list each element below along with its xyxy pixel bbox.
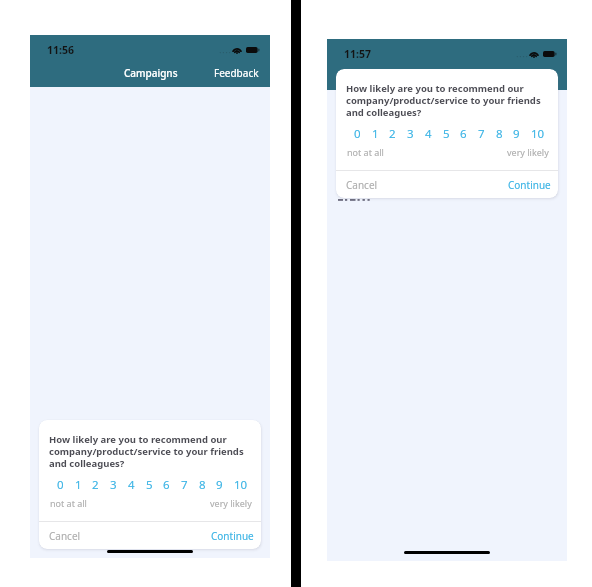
staticText: How likely are you to recommend our comp… <box>49 433 251 470</box>
staticText: 11:56 <box>47 43 74 57</box>
button[interactable]: 2 <box>92 477 99 493</box>
staticText: 7 <box>181 477 188 493</box>
button[interactable]: 0 <box>354 126 361 142</box>
staticText: 7 <box>478 126 485 142</box>
button[interactable]: 2 <box>389 126 396 142</box>
staticText: 2 <box>92 477 99 493</box>
staticText: 9 <box>513 126 520 142</box>
staticText: Cancel <box>346 178 378 192</box>
button[interactable]: 6 <box>163 477 170 493</box>
button[interactable]: 7 <box>478 126 485 142</box>
button[interactable]: 8 <box>496 126 503 142</box>
staticText: Continue <box>508 178 551 192</box>
button[interactable]: 5 <box>443 126 450 142</box>
staticText: 10 <box>234 477 248 493</box>
staticText: 8 <box>496 126 503 142</box>
button[interactable]: Cancel <box>346 178 378 192</box>
button[interactable]: 3 <box>110 477 117 493</box>
button[interactable]: 1 <box>75 477 82 493</box>
button[interactable]: 4 <box>128 477 135 493</box>
staticText: 1 <box>372 126 379 142</box>
staticText: 5 <box>443 126 450 142</box>
button[interactable]: Feedback <box>210 61 270 85</box>
staticText: Feedback <box>214 66 259 80</box>
staticText: very likely <box>507 146 549 158</box>
staticText: 6 <box>460 126 467 142</box>
staticText: 6 <box>163 477 170 493</box>
button[interactable]: 0 <box>57 477 64 493</box>
button[interactable]: 8 <box>199 477 206 493</box>
staticText: Continue <box>211 529 254 543</box>
button[interactable]: Continue <box>508 178 551 192</box>
staticText: 9 <box>216 477 223 493</box>
staticText: Campaigns <box>124 66 178 80</box>
staticText: How likely are you to recommend our comp… <box>346 82 548 119</box>
button[interactable]: Campaigns <box>117 61 182 85</box>
staticText: very likely <box>210 497 252 509</box>
staticText: 2 <box>389 126 396 142</box>
staticText: not at all <box>50 497 87 509</box>
button[interactable]: Cancel <box>49 529 81 543</box>
staticText: Cancel <box>49 529 81 543</box>
staticText: 11:57 <box>344 47 371 61</box>
button[interactable]: 10 <box>234 477 248 493</box>
button[interactable]: 9 <box>513 126 520 142</box>
staticText: 10 <box>531 126 545 142</box>
staticText: 3 <box>110 477 117 493</box>
button[interactable]: 1 <box>372 126 379 142</box>
button[interactable]: 5 <box>146 477 153 493</box>
button[interactable]: 7 <box>181 477 188 493</box>
button[interactable]: 6 <box>460 126 467 142</box>
staticText: 0 <box>57 477 64 493</box>
staticText: 1 <box>75 477 82 493</box>
staticText: 3 <box>407 126 414 142</box>
button[interactable]: 4 <box>425 126 432 142</box>
staticText: 5 <box>146 477 153 493</box>
staticText: 4 <box>425 126 432 142</box>
button[interactable]: 10 <box>531 126 545 142</box>
button[interactable]: 9 <box>216 477 223 493</box>
button[interactable]: 3 <box>407 126 414 142</box>
staticText: not at all <box>347 146 384 158</box>
staticText: 4 <box>128 477 135 493</box>
staticText: 0 <box>354 126 361 142</box>
staticText: 8 <box>199 477 206 493</box>
button[interactable]: Continue <box>211 529 254 543</box>
